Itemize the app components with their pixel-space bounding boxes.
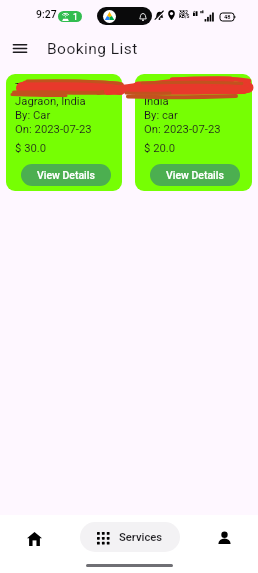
staticText: On: 2023-07-23 <box>144 123 221 136</box>
button[interactable]: View Details <box>150 164 240 186</box>
staticText: View Details <box>37 169 95 181</box>
staticText: On: 2023-07-23 <box>15 123 92 136</box>
staticText: By: Car <box>15 109 51 122</box>
staticText: Title <box>144 81 166 94</box>
button[interactable]: Title <box>135 74 252 191</box>
staticText: 9:27 <box>36 8 57 20</box>
button[interactable]: Profile <box>210 524 238 552</box>
staticText: View Details <box>166 169 224 181</box>
button[interactable]: Title <box>6 74 122 191</box>
staticText: Services <box>119 531 163 544</box>
button[interactable]: Open navigation menu <box>10 38 30 58</box>
staticText: 48 <box>224 14 231 21</box>
staticText: 1 <box>73 12 78 22</box>
staticText: $ 30.0 <box>15 142 47 155</box>
staticText: Jagraon, India <box>15 95 86 108</box>
staticText: KB/S <box>179 14 190 19</box>
staticText: Title <box>15 81 37 94</box>
staticText: By: car <box>144 109 178 122</box>
staticText: 382 <box>179 9 189 15</box>
staticText: $ 20.0 <box>144 142 176 155</box>
staticText: India <box>144 95 169 108</box>
button[interactable]: Services <box>80 522 180 552</box>
button[interactable]: View Details <box>21 164 111 186</box>
staticText: Booking List <box>47 40 138 58</box>
button[interactable]: Home <box>20 525 48 553</box>
